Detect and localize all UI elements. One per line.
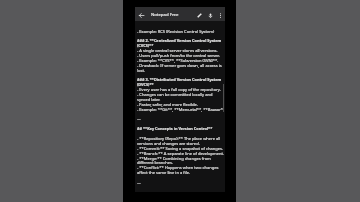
staticText: - Changes can be committed locally and [137, 92, 213, 98]
staticText: - Users pull/push from/to the central se… [137, 53, 220, 59]
staticText: - Every user has a full copy of the repo… [137, 87, 221, 93]
staticText: ## **Key Concepts in Version Control** [137, 126, 213, 131]
button[interactable]: Edit [189, 8, 209, 22]
staticText: - Example: **Git**, **Mercurial**, **Baz… [137, 107, 224, 113]
staticText: synced later. [137, 97, 161, 103]
staticText: - **Commit:** Saving a snapshot of chang… [137, 146, 223, 152]
staticText: ### 3. **Distributed Version Control Sys… [137, 77, 222, 82]
button[interactable]: More options [210, 8, 230, 22]
staticText: - **Conflict:** Happens when two changes [137, 165, 219, 171]
staticText: - Drawback: If server goes down, all acc… [137, 63, 222, 69]
staticText: - **Repository (Repo):** The place where… [137, 136, 221, 142]
button[interactable]: Navigate up [131, 8, 151, 22]
staticText: - Faster, safer, and more flexible. [137, 102, 198, 108]
staticText: - **Merge:** Combining changes from [137, 156, 211, 162]
button[interactable]: Voice input [200, 8, 220, 22]
staticText: versions and changes are stored. [137, 141, 200, 147]
staticText: (CVCS)** [137, 43, 154, 48]
staticText: - **Branch:** A separate line of develop… [137, 151, 224, 157]
staticText: (DVCS)** [137, 82, 154, 87]
staticText: - Example: **CVS**, **Subversion (SVN)**… [137, 58, 219, 64]
staticText: affect the same line in a file. [137, 170, 191, 176]
staticText: - Example: RCS (Revision Control System) [137, 29, 215, 35]
staticText: Notepad Free [151, 11, 179, 17]
staticText: different branches. [137, 160, 174, 166]
staticText: --- [137, 180, 141, 186]
staticText: lost. [137, 68, 145, 74]
staticText: ### 2. **Centralized Version Control Sys… [137, 38, 222, 43]
staticText: - A single central server stores all ver… [137, 48, 218, 54]
staticText: --- [137, 116, 141, 122]
